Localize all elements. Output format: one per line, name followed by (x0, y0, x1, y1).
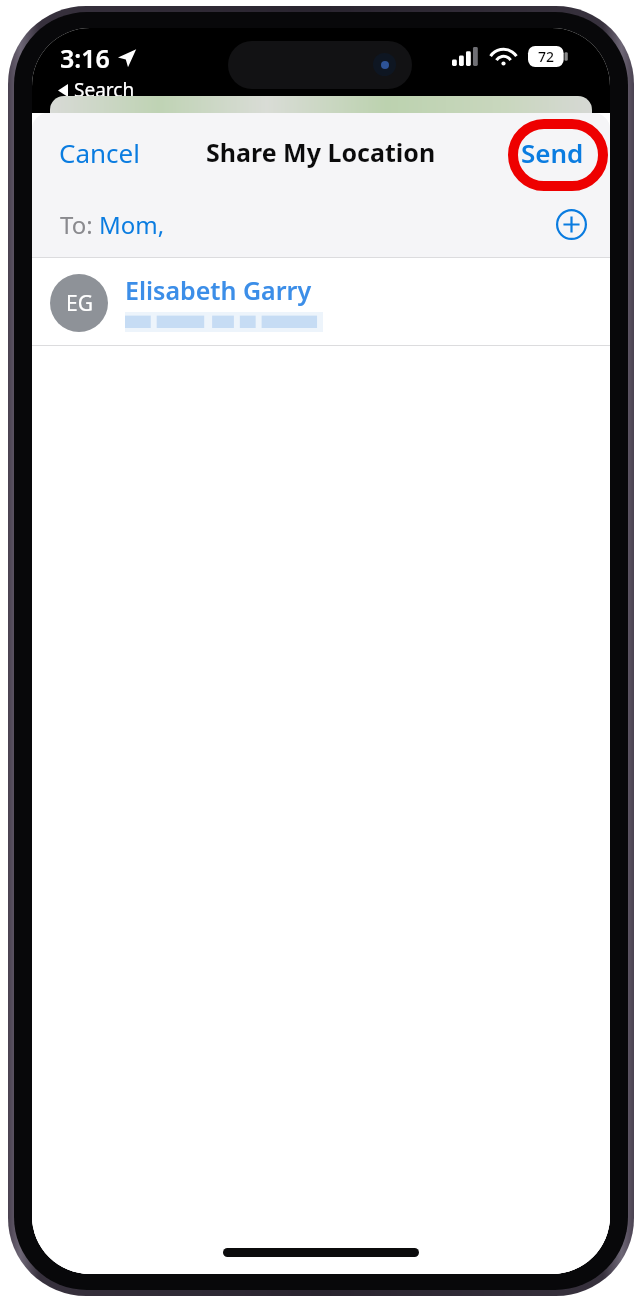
staticText: Search (74, 77, 135, 103)
staticText: Cancel (59, 135, 140, 170)
staticText: Elisabeth Garry (125, 273, 312, 307)
staticText: Share My Location (206, 135, 436, 169)
button[interactable]: Add contact (550, 203, 593, 246)
staticText: Send (521, 135, 584, 170)
button[interactable]: Send (503, 125, 610, 180)
staticText: EG (66, 289, 93, 318)
staticText: 3:16 (60, 41, 110, 75)
button[interactable]: Search (56, 75, 137, 105)
button[interactable]: EG (32, 258, 610, 346)
staticText: 72 (538, 47, 555, 66)
button[interactable]: Cancel (32, 125, 158, 180)
staticText: To: (60, 208, 99, 241)
staticText: Mom, (99, 208, 165, 241)
